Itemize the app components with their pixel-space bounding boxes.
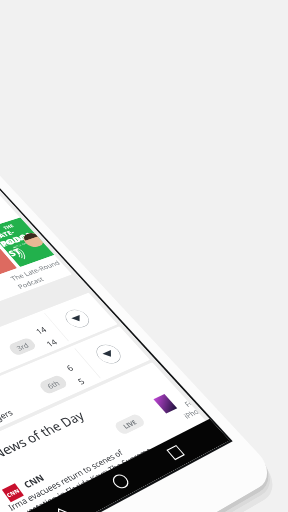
staticText: iPhone (181, 407, 200, 421)
staticText: 3rd (14, 341, 30, 352)
staticText: 14 (33, 324, 49, 336)
staticText: 6 (64, 362, 76, 373)
staticText: with J.J. Zachariason (12, 238, 37, 249)
button[interactable]: THE (0, 217, 72, 286)
staticText: CNN (5, 486, 21, 499)
button[interactable]: Sports Circle (0, 229, 34, 301)
staticText: CNN (21, 471, 47, 491)
staticText: Following × (182, 399, 193, 409)
staticText: 6th (45, 378, 62, 391)
staticText: LIVE (121, 418, 139, 431)
button[interactable]: Recent apps (159, 439, 192, 466)
staticText: Top News of the Day (0, 407, 88, 474)
staticText: The Late-Round Podcast (8, 258, 71, 291)
button[interactable]: Expand (61, 307, 94, 331)
staticText: Up First (0, 280, 1, 313)
button[interactable]: Home (104, 467, 137, 496)
staticText: 5 (75, 375, 87, 387)
staticText: devastation in Florida Keys; The Supreme (12, 445, 154, 512)
staticText: 14 (44, 337, 60, 349)
staticText: LATE-ROUND (0, 223, 38, 248)
staticText: THE (1, 223, 15, 231)
staticText: PODCAST (0, 229, 48, 259)
button[interactable]: LIVE (121, 418, 139, 431)
staticText: Sports Circle (0, 266, 48, 306)
button[interactable]: Expand (91, 341, 126, 367)
button[interactable]: Back (44, 497, 79, 512)
staticText: Los Angeles Dodgers (0, 407, 15, 451)
staticText: Irma evacuees return to scenes of (6, 447, 125, 512)
